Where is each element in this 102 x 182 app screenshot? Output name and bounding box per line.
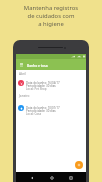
staticText: Data do banho: 10/01/17 [26,106,60,110]
staticText: Periodicidade: 30 dias [26,109,56,113]
button[interactable]: Voltar [27,173,36,182]
staticText: Periodicidade: 30 dias [26,84,56,88]
button[interactable]: Recentes [66,173,75,182]
button[interactable]: Início [47,173,56,182]
staticText: Banho e tosa [27,63,48,67]
button[interactable]: Menu [19,62,24,67]
button[interactable]: Data do banho: 10/01/17 [16,101,86,116]
staticText: Abril [19,72,26,76]
button[interactable]: Adicionar registro [75,161,83,169]
staticText: Data do banho: 16/04/17 [26,81,60,85]
button[interactable]: Menu [16,59,86,70]
button[interactable]: Data do banho: 16/04/17 [16,76,86,91]
staticText: Janeiro [19,94,30,98]
staticText: Local: Pet Shop [26,87,47,91]
staticText: Local: Casa [26,112,41,116]
staticText: Mantenha registros de cuidados com a hig… [0,4,102,28]
